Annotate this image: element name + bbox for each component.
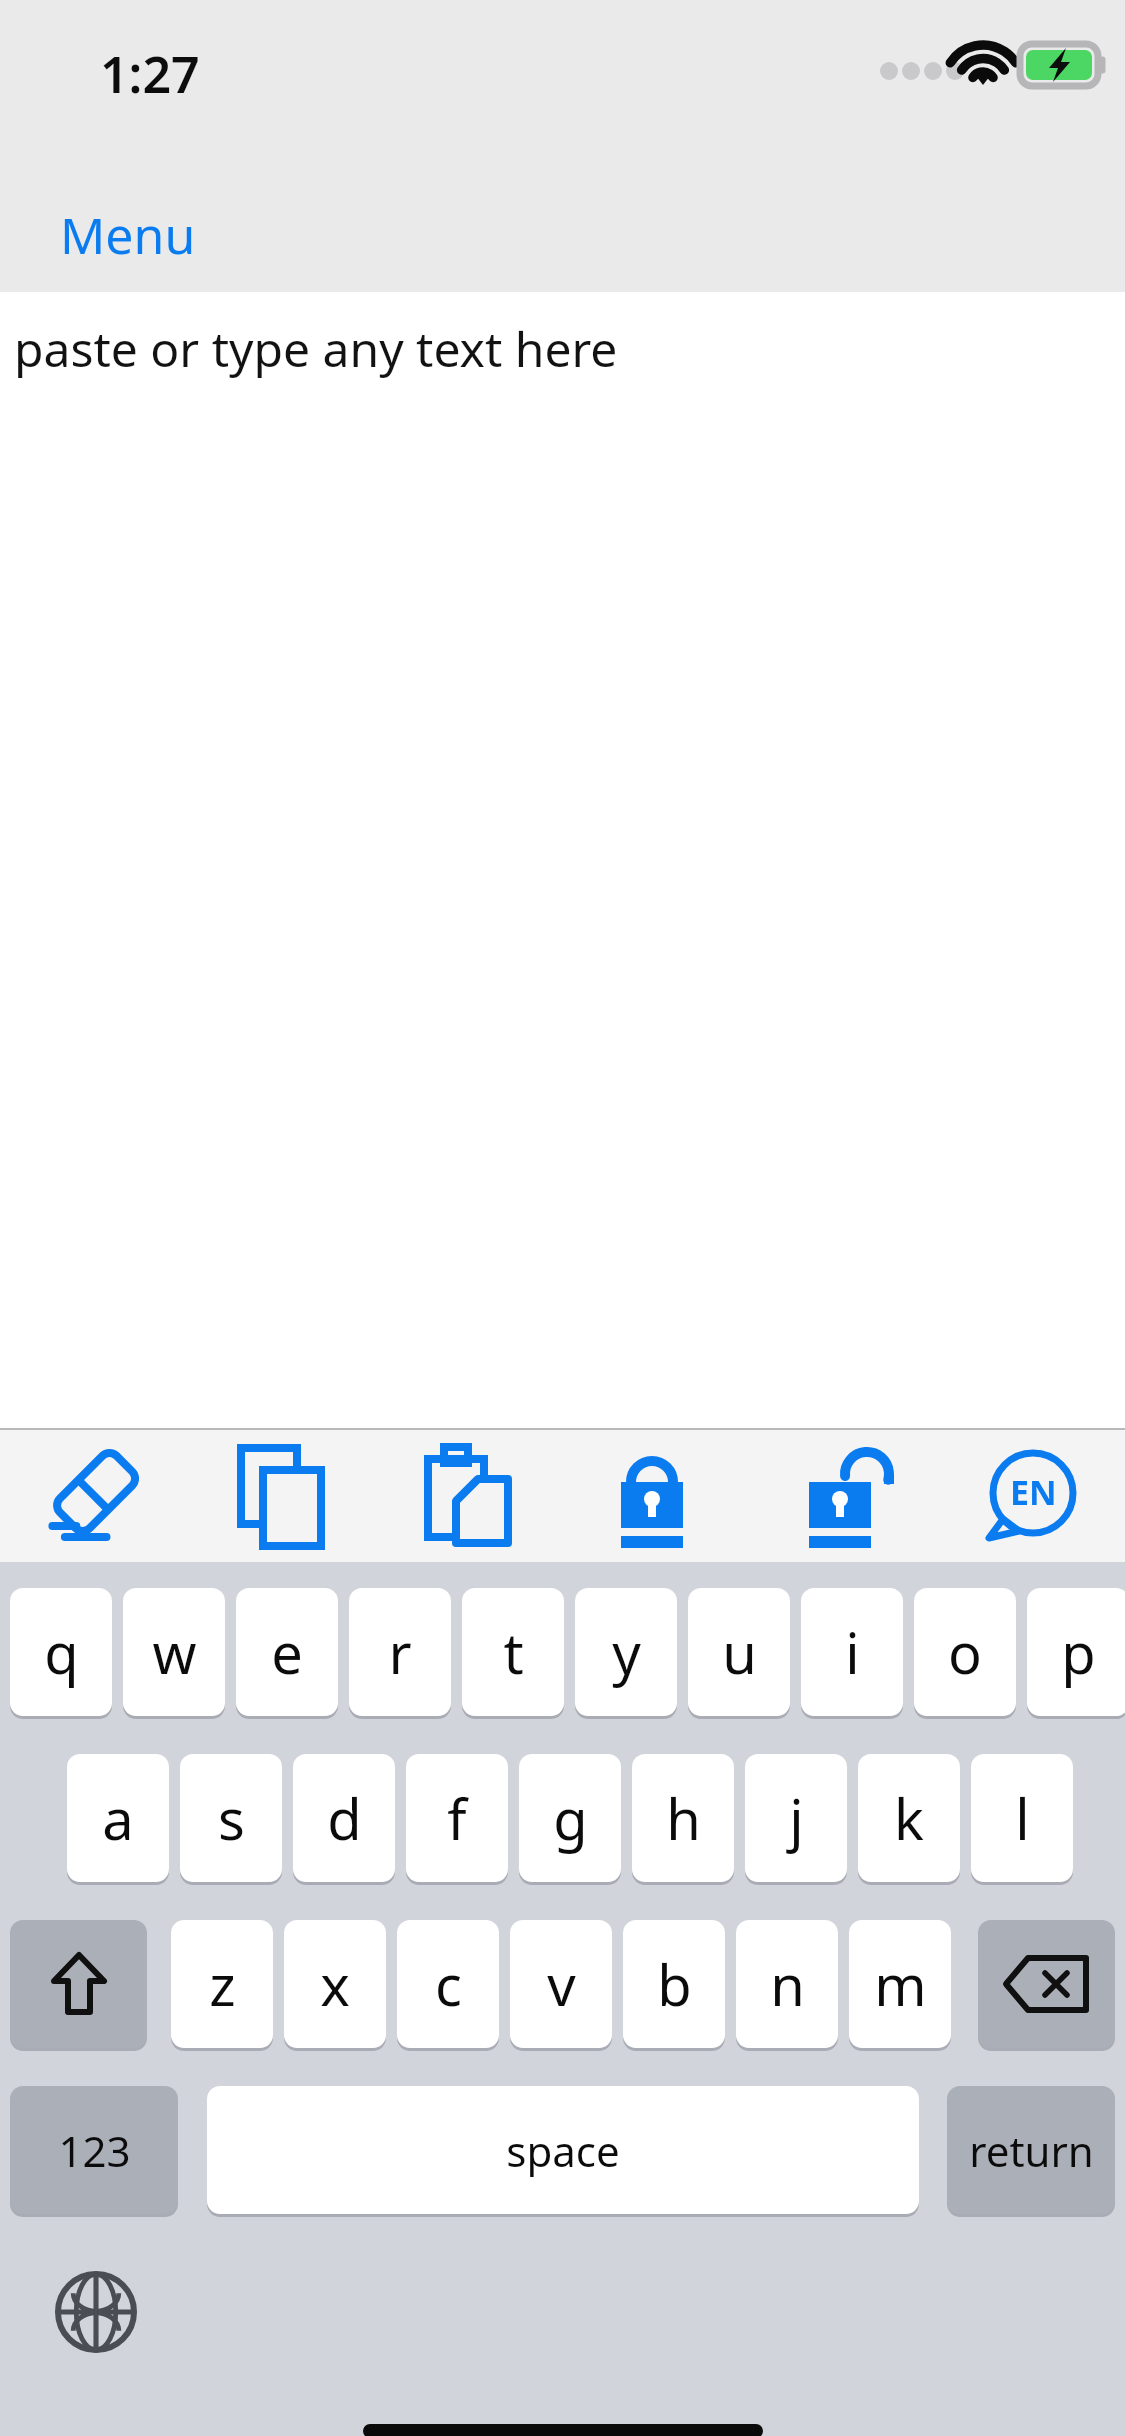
button[interactable]: q	[10, 1588, 112, 1716]
staticText: m	[874, 1946, 927, 2022]
button[interactable]: Encrypt	[561, 1430, 749, 1562]
button[interactable]: t	[462, 1588, 564, 1716]
staticText: g	[553, 1780, 588, 1856]
staticText: c	[435, 1946, 462, 2022]
button[interactable]: x	[284, 1920, 386, 2048]
button[interactable]: w	[123, 1588, 225, 1716]
staticText: Menu	[60, 201, 196, 269]
button[interactable]: 123	[10, 2086, 178, 2214]
staticText: r	[388, 1614, 412, 1690]
staticText: n	[770, 1946, 805, 2022]
staticText: EN	[1010, 1469, 1057, 1515]
staticText: k	[894, 1780, 924, 1856]
button[interactable]: f	[406, 1754, 508, 1882]
button[interactable]: Erase	[0, 1430, 187, 1562]
staticText: v	[547, 1946, 576, 2022]
button[interactable]: h	[632, 1754, 734, 1882]
button[interactable]: b	[623, 1920, 725, 2048]
staticText: y	[612, 1614, 641, 1690]
staticText: 123	[58, 2122, 131, 2179]
button[interactable]: d	[293, 1754, 395, 1882]
staticText: p	[1061, 1614, 1096, 1690]
staticText: a	[102, 1780, 134, 1856]
button[interactable]: Paste	[374, 1430, 561, 1562]
button[interactable]: Menu	[0, 178, 196, 292]
button[interactable]: Backspace	[978, 1920, 1115, 2048]
button[interactable]: g	[519, 1754, 621, 1882]
button[interactable]: paste or type any text here	[0, 292, 1125, 1428]
staticText: q	[44, 1614, 79, 1690]
staticText: i	[845, 1614, 860, 1690]
staticText: x	[320, 1946, 350, 2022]
staticText: space	[506, 2122, 620, 2179]
staticText: t	[503, 1614, 524, 1690]
staticText: d	[327, 1780, 362, 1856]
button[interactable]: n	[736, 1920, 838, 2048]
button[interactable]: o	[914, 1588, 1016, 1716]
button[interactable]: z	[171, 1920, 273, 2048]
button[interactable]: e	[236, 1588, 338, 1716]
button[interactable]: space	[207, 2086, 919, 2214]
button[interactable]: Next keyboard	[36, 2252, 156, 2372]
button[interactable]: s	[180, 1754, 282, 1882]
staticText: j	[789, 1780, 804, 1856]
button[interactable]: p	[1027, 1588, 1125, 1716]
button[interactable]: Language EN	[937, 1430, 1125, 1562]
button[interactable]: v	[510, 1920, 612, 2048]
staticText: b	[657, 1946, 692, 2022]
button[interactable]: i	[801, 1588, 903, 1716]
staticText: w	[152, 1614, 197, 1690]
staticText: z	[209, 1946, 236, 2022]
button[interactable]: j	[745, 1754, 847, 1882]
staticText: paste or type any text here	[14, 316, 618, 381]
button[interactable]: u	[688, 1588, 790, 1716]
button[interactable]: Copy	[187, 1430, 374, 1562]
staticText: return	[969, 2122, 1094, 2179]
button[interactable]: m	[849, 1920, 951, 2048]
staticText: f	[447, 1780, 467, 1856]
staticText: u	[722, 1614, 757, 1690]
staticText: o	[948, 1614, 982, 1690]
button[interactable]: Shift	[10, 1920, 147, 2048]
button[interactable]: Decrypt	[749, 1430, 937, 1562]
staticText: h	[666, 1780, 701, 1856]
staticText: s	[218, 1780, 245, 1856]
button[interactable]: a	[67, 1754, 169, 1882]
staticText: 1:27	[100, 40, 200, 108]
button[interactable]: r	[349, 1588, 451, 1716]
button[interactable]: y	[575, 1588, 677, 1716]
button[interactable]: k	[858, 1754, 960, 1882]
staticText: l	[1015, 1780, 1030, 1856]
button[interactable]: c	[397, 1920, 499, 2048]
button[interactable]: l	[971, 1754, 1073, 1882]
button[interactable]: return	[947, 2086, 1115, 2214]
staticText: e	[271, 1614, 303, 1690]
